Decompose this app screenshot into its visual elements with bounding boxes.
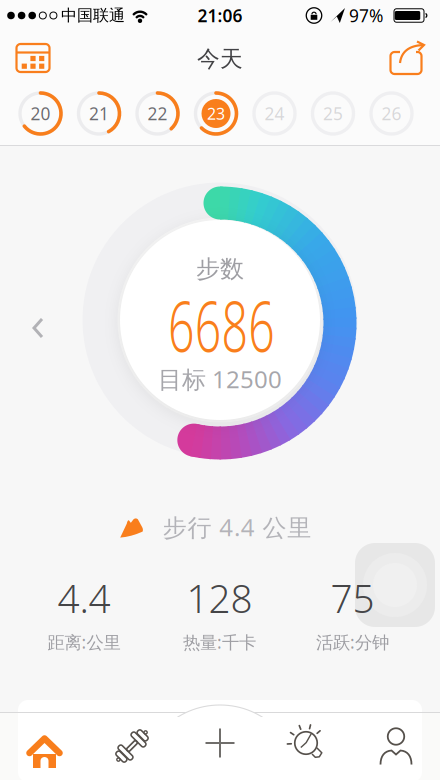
staticText: 23 bbox=[207, 103, 225, 124]
staticText: 21:06 bbox=[197, 4, 242, 27]
button[interactable]: 21 bbox=[76, 91, 121, 136]
staticText: 今天 bbox=[197, 45, 243, 73]
button[interactable]: 20 bbox=[18, 91, 63, 136]
staticText: 22 bbox=[147, 102, 167, 125]
button[interactable]: 23 bbox=[193, 91, 238, 136]
staticText: 25 bbox=[323, 102, 343, 125]
button[interactable] bbox=[177, 711, 263, 775]
staticText: 75 bbox=[330, 572, 374, 624]
button[interactable] bbox=[11, 38, 55, 78]
staticText: 热量:千卡 bbox=[183, 630, 256, 653]
button[interactable] bbox=[265, 712, 351, 776]
button[interactable] bbox=[353, 714, 439, 778]
button[interactable]: 22 bbox=[135, 91, 180, 136]
button[interactable]: 25 bbox=[310, 91, 355, 136]
staticText: 活跃:分钟 bbox=[316, 630, 389, 653]
staticText: 97% bbox=[349, 4, 383, 27]
button[interactable] bbox=[384, 38, 430, 78]
button[interactable] bbox=[28, 317, 48, 339]
staticText: 步行 4.4 公里 bbox=[163, 511, 311, 543]
staticText: 步数 bbox=[196, 254, 244, 284]
staticText: 128 bbox=[186, 572, 252, 624]
button[interactable]: 24 bbox=[252, 91, 297, 136]
staticText: 26 bbox=[381, 102, 401, 125]
staticText: 目标 12500 bbox=[158, 363, 282, 395]
staticText: 中国联通 bbox=[61, 6, 125, 25]
button[interactable] bbox=[1, 714, 87, 778]
staticText: 4.4 bbox=[57, 572, 110, 624]
staticText: 6686 bbox=[141, 279, 301, 371]
staticText: 距离:公里 bbox=[47, 630, 120, 653]
staticText: 24 bbox=[264, 102, 284, 125]
button[interactable] bbox=[89, 714, 175, 778]
staticText: 21 bbox=[89, 102, 109, 125]
staticText: 20 bbox=[30, 102, 50, 125]
button[interactable]: 26 bbox=[369, 91, 414, 136]
